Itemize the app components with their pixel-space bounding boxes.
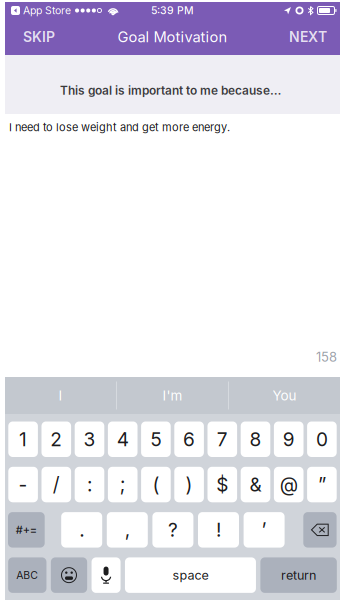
button[interactable]: 6 bbox=[174, 421, 204, 457]
staticText: ’ bbox=[262, 518, 267, 541]
staticText: Goal Motivation bbox=[117, 28, 227, 46]
button[interactable]: 4 bbox=[108, 421, 137, 457]
button[interactable]: , bbox=[107, 512, 148, 548]
button[interactable]: You bbox=[229, 377, 340, 414]
staticText: 4 bbox=[117, 428, 129, 451]
button[interactable]: ? bbox=[152, 512, 193, 548]
button[interactable]: 9 bbox=[274, 421, 303, 457]
staticText: ? bbox=[168, 518, 178, 541]
button[interactable]: 7 bbox=[207, 421, 237, 457]
staticText: - bbox=[19, 473, 28, 496]
button[interactable]: 1 bbox=[8, 421, 38, 457]
staticText: App Store bbox=[23, 4, 71, 17]
staticText: NEXT bbox=[289, 28, 327, 45]
staticText: #+= bbox=[16, 523, 37, 536]
button[interactable]: 3 bbox=[75, 421, 104, 457]
staticText: 158 bbox=[316, 349, 337, 365]
staticText: 3 bbox=[83, 428, 95, 451]
staticText: : bbox=[87, 473, 92, 496]
staticText: 8 bbox=[249, 428, 261, 451]
button[interactable]: ” bbox=[307, 467, 337, 502]
staticText: ; bbox=[120, 473, 126, 496]
staticText: 5 bbox=[150, 428, 161, 451]
staticText: 5:39 PM bbox=[151, 4, 194, 17]
button[interactable]: Dictate bbox=[91, 557, 120, 593]
staticText: 7 bbox=[217, 428, 228, 451]
button[interactable]: space bbox=[125, 557, 256, 593]
button[interactable]: @ bbox=[274, 467, 303, 502]
staticText: 2 bbox=[50, 428, 62, 451]
staticText: 6 bbox=[183, 428, 195, 451]
staticText: return bbox=[281, 567, 316, 583]
button[interactable]: 5 bbox=[141, 421, 171, 457]
staticText: 0 bbox=[316, 428, 328, 451]
staticText: $ bbox=[216, 473, 228, 496]
staticText: ” bbox=[318, 473, 326, 496]
button[interactable]: Emoji bbox=[51, 557, 87, 593]
button[interactable]: & bbox=[241, 467, 270, 502]
button[interactable]: $ bbox=[207, 467, 237, 502]
button[interactable]: 8 bbox=[241, 421, 270, 457]
button[interactable]: / bbox=[41, 467, 71, 502]
staticText: 9 bbox=[283, 428, 295, 451]
button[interactable]: ’ bbox=[244, 512, 285, 548]
button[interactable]: ; bbox=[108, 467, 137, 502]
staticText: This goal is important to me because… bbox=[60, 83, 281, 97]
button[interactable]: - bbox=[8, 467, 38, 502]
button[interactable]: I'm bbox=[117, 377, 228, 414]
staticText: ) bbox=[186, 473, 193, 496]
button[interactable]: ABC bbox=[8, 557, 46, 593]
staticText: I need to lose weight and get more energ… bbox=[9, 120, 230, 134]
staticText: / bbox=[53, 473, 60, 496]
staticText: SKIP bbox=[23, 28, 55, 45]
button[interactable]: 0 bbox=[307, 421, 337, 457]
button[interactable]: #+= bbox=[8, 512, 45, 548]
staticText: I'm bbox=[162, 387, 182, 404]
button[interactable]: ( bbox=[141, 467, 171, 502]
staticText: & bbox=[249, 473, 261, 496]
button[interactable]: Delete bbox=[303, 512, 337, 548]
button[interactable]: : bbox=[75, 467, 104, 502]
staticText: ABC bbox=[16, 569, 38, 581]
staticText: space bbox=[172, 567, 208, 583]
staticText: , bbox=[125, 518, 130, 541]
staticText: You bbox=[272, 387, 296, 404]
button[interactable]: ! bbox=[198, 512, 239, 548]
staticText: @ bbox=[280, 473, 298, 496]
staticText: ( bbox=[152, 473, 159, 496]
button[interactable]: ) bbox=[174, 467, 204, 502]
staticText: ! bbox=[216, 518, 221, 541]
staticText: 1 bbox=[19, 428, 27, 451]
button[interactable]: 2 bbox=[41, 421, 71, 457]
button[interactable]: . bbox=[61, 512, 102, 548]
staticText: . bbox=[79, 518, 84, 541]
staticText: I bbox=[58, 387, 62, 404]
button[interactable]: NEXT bbox=[279, 19, 340, 55]
button[interactable]: SKIP bbox=[5, 19, 65, 55]
button[interactable]: return bbox=[260, 557, 337, 593]
